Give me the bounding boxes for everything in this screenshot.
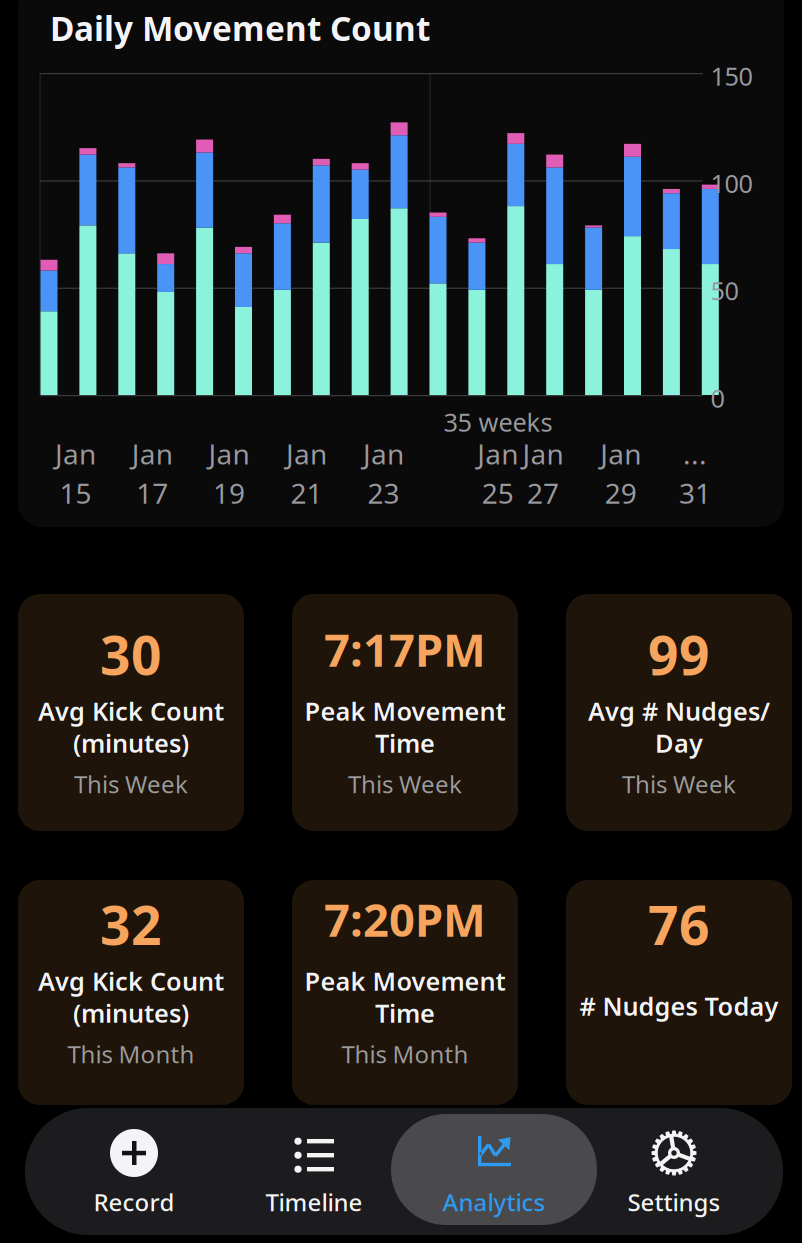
staticText: 31 <box>679 474 711 511</box>
staticText: 76 <box>648 889 710 960</box>
staticText: Analytics <box>442 1186 545 1218</box>
staticText: 21 <box>291 474 323 511</box>
staticText: Jan <box>600 435 641 472</box>
staticText: 25 <box>482 474 514 511</box>
staticText: This Week <box>348 768 462 800</box>
staticText: Jan <box>132 435 173 472</box>
staticText: Daily Movement Count <box>50 6 430 50</box>
staticText: 29 <box>605 474 637 511</box>
staticText: Peak Movement <box>304 694 505 728</box>
staticText: 30 <box>100 619 162 690</box>
staticText: ... <box>683 435 707 472</box>
staticText: Jan <box>363 435 404 472</box>
staticText: 100 <box>710 166 752 200</box>
button[interactable]: Analytics <box>404 1114 584 1225</box>
button[interactable]: 30 <box>18 594 244 831</box>
staticText: This Month <box>341 1038 468 1070</box>
staticText: Jan <box>522 435 563 472</box>
staticText: This Week <box>622 768 736 800</box>
button[interactable]: 7:17PM <box>292 594 518 831</box>
staticText: Jan <box>208 435 249 472</box>
button[interactable]: 32 <box>18 880 244 1105</box>
staticText: 15 <box>59 474 91 511</box>
staticText: # Nudges Today <box>579 989 778 1023</box>
staticText: 23 <box>367 474 399 511</box>
staticText: Jan <box>55 435 96 472</box>
staticText: (minutes) <box>73 996 189 1030</box>
staticText: Time <box>375 726 435 760</box>
staticText: 17 <box>136 474 168 511</box>
button[interactable]: Record <box>44 1114 224 1225</box>
staticText: Peak Movement <box>304 964 505 998</box>
staticText: 150 <box>710 59 752 93</box>
staticText: 99 <box>648 619 710 690</box>
staticText: Record <box>93 1186 174 1218</box>
staticText: (minutes) <box>73 726 189 760</box>
staticText: Avg # Nudges/ <box>588 694 770 728</box>
staticText: Timeline <box>265 1186 362 1218</box>
staticText: This Month <box>67 1038 194 1070</box>
staticText: 27 <box>527 474 559 511</box>
staticText: 7:20PM <box>324 889 486 949</box>
staticText: 32 <box>100 889 162 960</box>
button[interactable]: Timeline <box>224 1114 404 1225</box>
staticText: 19 <box>213 474 245 511</box>
staticText: Avg Kick Count <box>38 694 224 728</box>
button[interactable]: 7:20PM <box>292 880 518 1105</box>
staticText: Settings <box>627 1186 720 1218</box>
staticText: This Week <box>74 768 188 800</box>
button[interactable]: 76 <box>566 880 792 1105</box>
staticText: 7:17PM <box>324 619 486 679</box>
staticText: Jan <box>477 435 518 472</box>
staticText: Jan <box>286 435 327 472</box>
staticText: Time <box>375 996 435 1030</box>
button[interactable]: 99 <box>566 594 792 831</box>
staticText: 0 <box>710 381 724 415</box>
staticText: 35 weeks <box>443 405 552 439</box>
staticText: Avg Kick Count <box>38 964 224 998</box>
staticText: Day <box>655 726 703 760</box>
button[interactable]: Settings <box>584 1114 764 1225</box>
staticText: 50 <box>710 274 738 307</box>
